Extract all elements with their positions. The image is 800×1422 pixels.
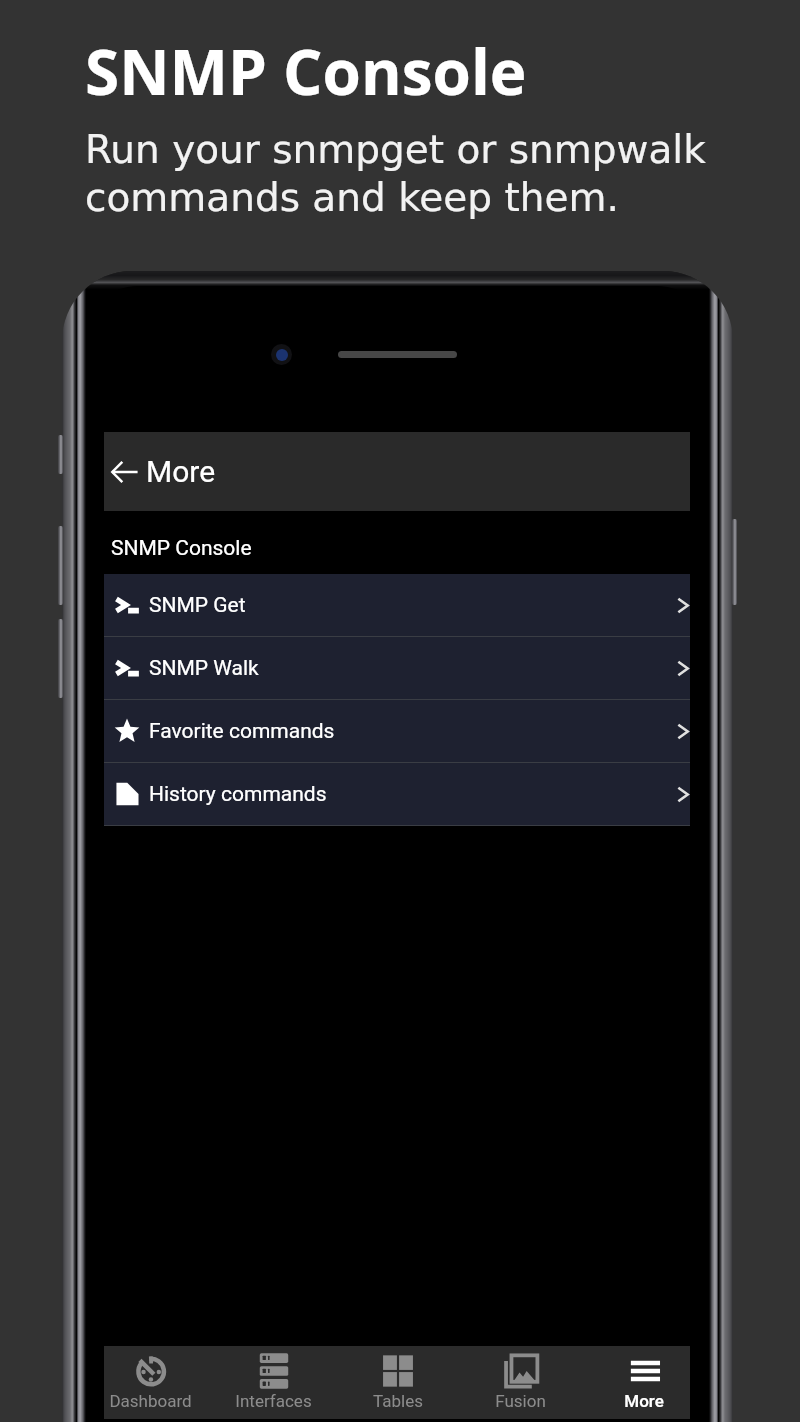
staticText: Tables xyxy=(373,1391,423,1411)
button[interactable]: Dashboard xyxy=(104,1346,197,1419)
staticText: Dashboard xyxy=(109,1391,192,1411)
staticText: More xyxy=(146,454,216,489)
button[interactable]: More xyxy=(597,1346,690,1419)
staticText: Favorite commands xyxy=(149,719,335,744)
staticText: More xyxy=(624,1391,664,1411)
staticText: Run your snmpget or snmpwalk commands an… xyxy=(85,127,750,220)
other: Back xyxy=(109,456,140,487)
button[interactable]: SNMP Walk xyxy=(104,637,690,699)
button[interactable]: Tables xyxy=(351,1346,444,1419)
staticText: Fusion xyxy=(495,1391,546,1411)
staticText: SNMP Console xyxy=(111,536,252,561)
staticText: SNMP Console xyxy=(85,29,527,113)
button[interactable]: Favorite commands xyxy=(104,700,690,762)
staticText: SNMP Walk xyxy=(149,656,259,681)
staticText: History commands xyxy=(149,782,327,807)
button[interactable]: Fusion xyxy=(474,1346,567,1419)
button[interactable]: SNMP Get xyxy=(104,574,690,636)
staticText: SNMP Get xyxy=(149,593,246,618)
button[interactable]: Interfaces xyxy=(227,1346,320,1419)
button[interactable]: Back xyxy=(104,432,690,511)
staticText: Interfaces xyxy=(235,1391,312,1411)
button[interactable]: History commands xyxy=(104,763,690,825)
